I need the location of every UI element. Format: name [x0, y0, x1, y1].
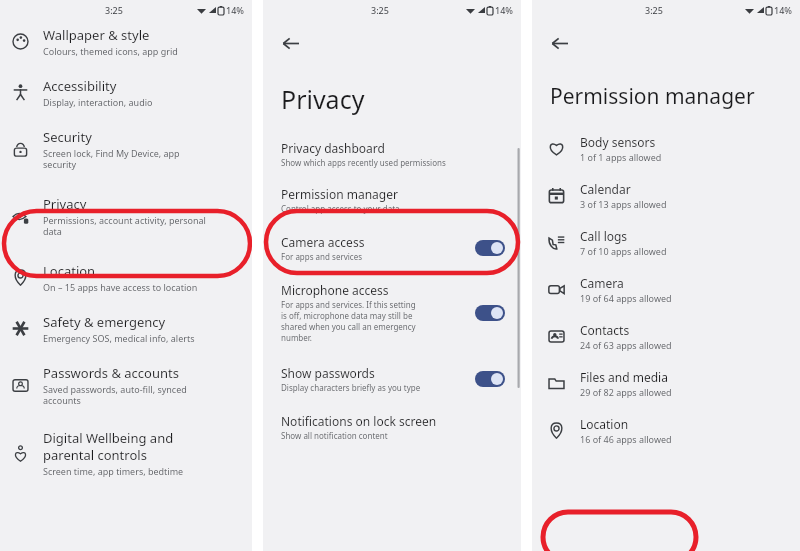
staticText: Show passwords: [281, 365, 375, 381]
button[interactable]: Privacy: [0, 185, 252, 252]
staticText: Display, interaction, audio: [43, 96, 153, 108]
staticText: Saved passwords, auto-fill, synced accou…: [43, 383, 187, 407]
button[interactable]: Show passwords: [263, 357, 521, 405]
staticText: 3:25: [105, 4, 123, 16]
button[interactable]: Back: [542, 26, 576, 60]
staticText: 14%: [774, 4, 792, 16]
staticText: Camera access: [281, 234, 365, 250]
staticText: Notifications on lock screen: [281, 413, 437, 429]
button[interactable]: Accessibility: [0, 69, 252, 120]
staticText: 19 of 64 apps allowed: [580, 292, 672, 304]
button[interactable]: Toggle: [475, 240, 505, 256]
staticText: Microphone access: [281, 282, 389, 298]
staticText: Files and media: [580, 369, 668, 385]
staticText: 24 of 63 apps allowed: [580, 339, 672, 351]
staticText: 3:25: [645, 4, 663, 16]
staticText: Privacy: [43, 195, 87, 213]
staticText: Wallpaper & style: [43, 26, 150, 44]
staticText: 14%: [226, 4, 244, 16]
button[interactable]: Camera: [532, 266, 800, 313]
staticText: 7 of 10 apps allowed: [580, 245, 667, 257]
staticText: Privacy: [281, 82, 365, 116]
staticText: 3:25: [371, 4, 389, 16]
button[interactable]: Passwords & accounts: [0, 356, 252, 421]
staticText: Permission manager: [550, 82, 755, 111]
button[interactable]: Safety & emergency: [0, 305, 252, 356]
staticText: Passwords & accounts: [43, 364, 179, 382]
staticText: Emergency SOS, medical info, alerts: [43, 332, 195, 344]
staticText: Screen time, app timers, bedtime: [43, 465, 184, 477]
button[interactable]: Notifications on lock screen: [263, 405, 521, 445]
staticText: Calendar: [580, 181, 631, 197]
staticText: Show all notification content: [281, 430, 388, 441]
staticText: Call logs: [580, 228, 628, 244]
staticText: Control app access to your data: [281, 203, 400, 214]
staticText: For apps and services. If this setting i…: [281, 299, 416, 343]
staticText: On – 15 apps have access to location: [43, 281, 198, 293]
button[interactable]: Location: [0, 252, 252, 305]
staticText: Contacts: [580, 322, 630, 338]
button[interactable]: Privacy dashboard: [263, 136, 521, 176]
button[interactable]: Toggle: [475, 371, 505, 387]
button[interactable]: Calendar: [532, 172, 800, 219]
staticText: For apps and services: [281, 251, 363, 262]
staticText: Permission manager: [281, 186, 398, 202]
staticText: 16 of 46 apps allowed: [580, 433, 672, 445]
staticText: Screen lock, Find My Device, app securit…: [43, 147, 180, 171]
staticText: Security: [43, 128, 92, 146]
button[interactable]: Camera access: [263, 226, 521, 272]
staticText: Permissions, account activity, personal …: [43, 214, 206, 238]
button[interactable]: Location: [532, 407, 800, 449]
staticText: 1 of 1 apps allowed: [580, 151, 662, 163]
staticText: Colours, themed icons, app grid: [43, 45, 178, 57]
button[interactable]: Digital Wellbeing and parental controls: [0, 421, 252, 483]
staticText: Privacy dashboard: [281, 140, 385, 156]
button[interactable]: Toggle: [475, 305, 505, 321]
button[interactable]: Files and media: [532, 360, 800, 407]
button[interactable]: Microphone access: [263, 272, 521, 357]
staticText: Body sensors: [580, 134, 656, 150]
button[interactable]: Back: [273, 26, 307, 60]
button[interactable]: Call logs: [532, 219, 800, 266]
staticText: Camera: [580, 275, 624, 291]
button[interactable]: Permission manager: [263, 176, 521, 226]
staticText: Location: [43, 262, 96, 280]
staticText: 14%: [495, 4, 513, 16]
staticText: 29 of 82 apps allowed: [580, 386, 672, 398]
staticText: 3 of 13 apps allowed: [580, 198, 667, 210]
button[interactable]: Wallpaper & style: [0, 22, 252, 69]
staticText: Digital Wellbeing and parental controls: [43, 429, 174, 464]
staticText: Display characters briefly as you type: [281, 382, 421, 393]
staticText: Accessibility: [43, 77, 117, 95]
staticText: Location: [580, 416, 629, 432]
button[interactable]: Security: [0, 120, 252, 185]
button[interactable]: Body sensors: [532, 129, 800, 172]
staticText: Safety & emergency: [43, 313, 166, 331]
button[interactable]: Contacts: [532, 313, 800, 360]
staticText: Show which apps recently used permission…: [281, 157, 446, 168]
